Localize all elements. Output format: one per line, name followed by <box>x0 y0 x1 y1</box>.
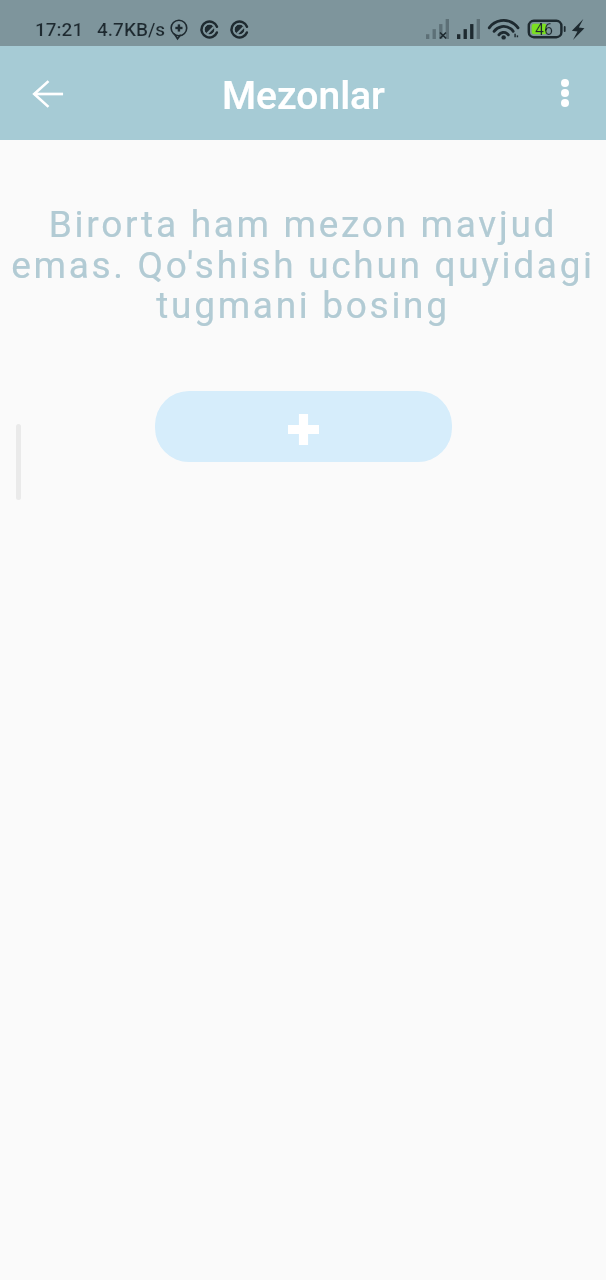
staticText: 4.7KB/s <box>97 18 166 40</box>
staticText: Birorta ham mezon mavjud emas. Qo'shish … <box>0 203 606 327</box>
button[interactable]: Back <box>19 64 77 122</box>
button[interactable]: Add <box>155 391 452 462</box>
staticText: 17:21 <box>35 18 84 40</box>
staticText: 46 <box>535 20 553 39</box>
staticText: Mezonlar <box>222 73 385 119</box>
button[interactable]: More options <box>537 65 593 121</box>
